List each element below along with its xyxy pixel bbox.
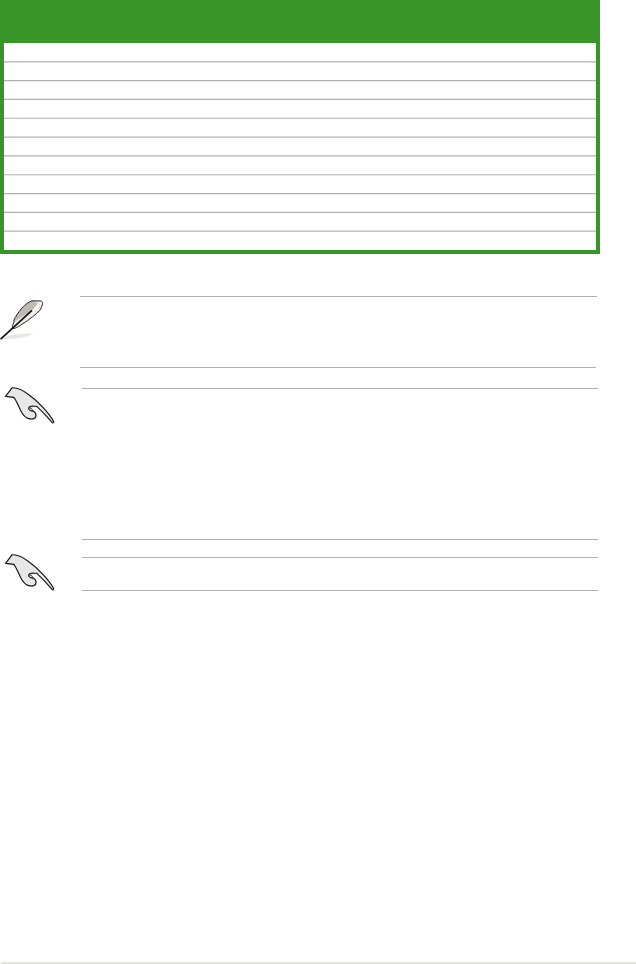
button[interactable]: Important [3, 550, 58, 595]
button[interactable] [0, 0, 600, 254]
button[interactable]: Important [3, 383, 58, 428]
button[interactable]: Note [0, 298, 46, 342]
